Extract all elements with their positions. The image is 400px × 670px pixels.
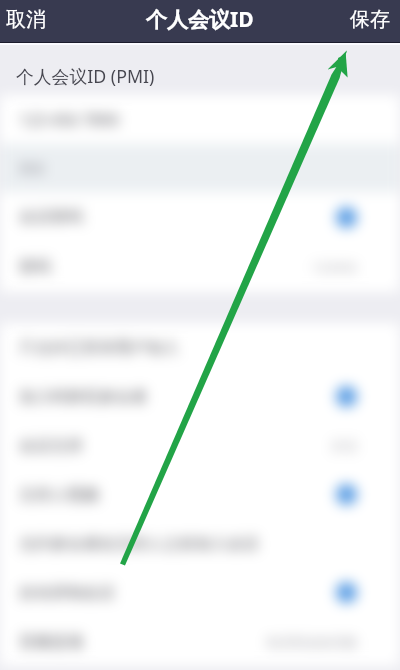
staticText: 加入时静音参会者 — [19, 387, 147, 407]
staticText: 密码 — [19, 257, 51, 277]
staticText: 自动录制会议 — [19, 583, 115, 603]
button[interactable]: 123 456 7890 — [0, 95, 400, 144]
staticText: 123456 — [312, 258, 357, 276]
staticText: 允许参会者在主持人之前加入会议 — [19, 534, 259, 554]
button[interactable]: 取消 — [0, 0, 58, 42]
staticText: 主持人视频 — [19, 485, 99, 505]
staticText: 音频选项 — [19, 632, 83, 652]
button[interactable]: 加入时静音参会者 — [0, 372, 400, 421]
button[interactable]: 只允许已登录用户加入 — [0, 323, 400, 372]
staticText: 会议主持 — [19, 436, 83, 456]
staticText: 会议密码 — [19, 207, 83, 227]
staticText: 取消 — [6, 7, 46, 32]
staticText: 安全 — [19, 160, 45, 176]
staticText: 个人会议ID (PMI) — [16, 64, 155, 88]
staticText: 个人会议ID — [146, 5, 254, 34]
button[interactable]: 音频选项 — [0, 617, 400, 666]
button[interactable]: 会议密码 — [0, 192, 400, 242]
button[interactable]: 密码 — [0, 242, 400, 292]
button[interactable]: 会议主持 — [0, 421, 400, 470]
staticText: 123 456 7890 — [19, 109, 119, 131]
button[interactable]: 自动录制会议 — [0, 568, 400, 617]
button[interactable]: 主持人视频 — [0, 470, 400, 519]
button[interactable]: 保存 — [338, 0, 400, 42]
button[interactable]: 允许参会者在主持人之前加入会议 — [0, 519, 400, 568]
staticText: 只允许已登录用户加入 — [19, 338, 179, 358]
staticText: 保存 — [350, 7, 390, 32]
